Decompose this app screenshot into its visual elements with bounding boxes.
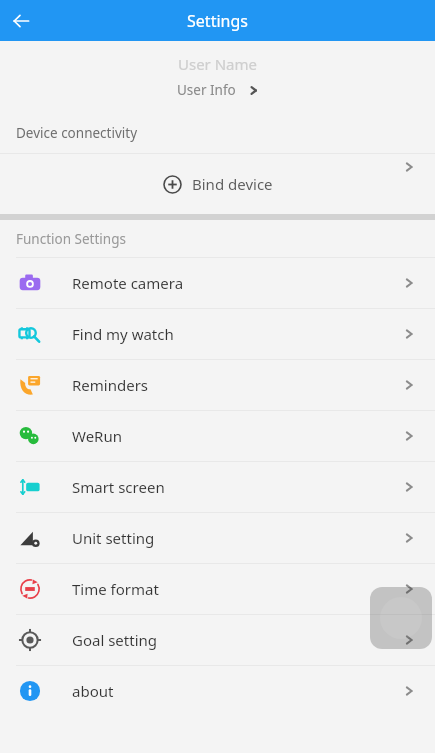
button[interactable]: User Name	[0, 41, 435, 112]
button[interactable]: Remote camera	[0, 257, 435, 308]
staticText: Device connectivity	[16, 124, 138, 142]
staticText: about	[72, 681, 114, 701]
staticText: Remote camera	[72, 273, 184, 293]
button[interactable]: Bind device	[0, 153, 435, 214]
button[interactable]: Smart screen	[0, 461, 435, 512]
staticText: Bind device	[192, 174, 273, 194]
button[interactable]: WeRun	[0, 410, 435, 461]
staticText: Reminders	[72, 375, 149, 395]
staticText: Time format	[72, 579, 159, 599]
staticText: Smart screen	[72, 477, 165, 497]
staticText: User Info	[177, 81, 236, 99]
staticText: Unit setting	[72, 528, 155, 548]
button[interactable]: Find my watch	[0, 308, 435, 359]
staticText: Settings	[187, 10, 248, 32]
button[interactable]: Goal setting	[0, 614, 435, 665]
staticText: WeRun	[72, 426, 122, 446]
button[interactable]: about	[0, 665, 435, 716]
staticText: Goal setting	[72, 630, 158, 650]
staticText: Find my watch	[72, 324, 174, 344]
staticText: Function Settings	[16, 230, 126, 248]
button[interactable]: Unit setting	[0, 512, 435, 563]
button[interactable]: Reminders	[0, 359, 435, 410]
staticText: User Name	[178, 54, 258, 74]
button[interactable]: Time format	[0, 563, 435, 614]
button[interactable]: Back	[0, 0, 41, 41]
